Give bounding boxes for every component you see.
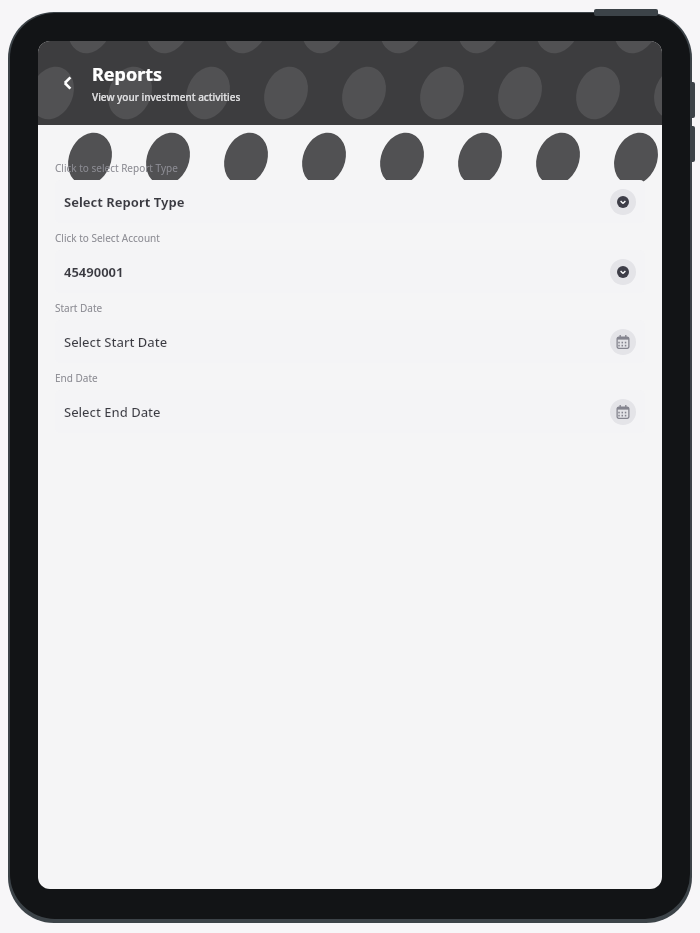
staticText: Start Date: [55, 301, 103, 315]
button[interactable]: Back: [48, 63, 88, 103]
staticText: View your investment activities: [92, 90, 241, 104]
staticText: Reports: [92, 62, 163, 87]
staticText: Click to select Report Type: [55, 161, 178, 175]
staticText: Click to Select Account: [55, 231, 160, 245]
staticText: End Date: [55, 371, 98, 385]
button[interactable]: 45490001: [55, 250, 645, 293]
staticText: Select End Date: [64, 403, 610, 421]
button[interactable]: Select Start Date: [55, 320, 645, 363]
button[interactable]: Select Report Type: [55, 180, 645, 223]
staticText: Select Report Type: [64, 193, 610, 211]
staticText: 45490001: [64, 263, 610, 281]
button[interactable]: Select End Date: [55, 390, 645, 433]
staticText: Select Start Date: [64, 333, 610, 351]
